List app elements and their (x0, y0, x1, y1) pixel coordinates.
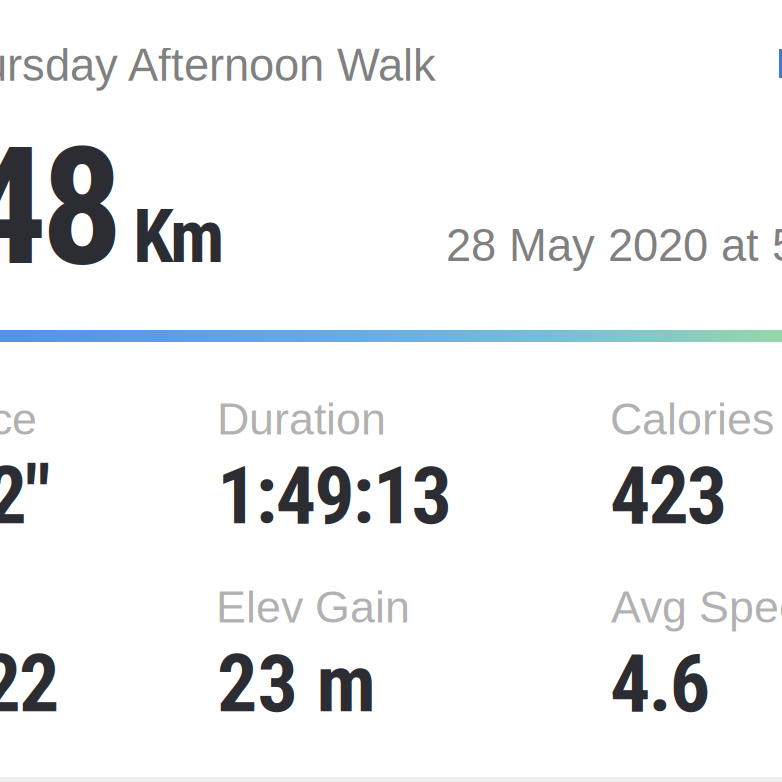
staticText: 1:49:13 (217, 449, 451, 543)
button[interactable]: Steps (0, 0, 320, 140)
staticText: 11,022 (0, 637, 59, 731)
button[interactable]: Elev Gain (0, 0, 320, 140)
staticText: Km (133, 194, 224, 280)
staticText: 423 (610, 449, 727, 543)
button[interactable]: Duration (0, 0, 320, 140)
staticText: 14'32" (0, 449, 51, 543)
button[interactable]: Edit (779, 0, 782, 96)
staticText: Elev Gain (216, 582, 410, 632)
staticText: 28 May 2020 at 5:04 PM (446, 220, 782, 271)
button[interactable]: Avg Speed (0, 0, 320, 140)
staticText: Thursday Afternoon Walk (0, 40, 436, 90)
staticText: Calories (610, 394, 774, 444)
staticText: Avg Speed (611, 582, 782, 632)
staticText: 23 m (217, 637, 375, 731)
button[interactable]: Thursday Afternoon Walk (0, 39, 469, 91)
staticText: 7.48 (0, 112, 123, 303)
button[interactable]: Pace (0, 0, 320, 140)
staticText: 4.6 (610, 637, 710, 731)
staticText: Duration (217, 394, 386, 444)
button[interactable]: Calories (0, 0, 320, 140)
staticText: Pace (0, 394, 37, 444)
